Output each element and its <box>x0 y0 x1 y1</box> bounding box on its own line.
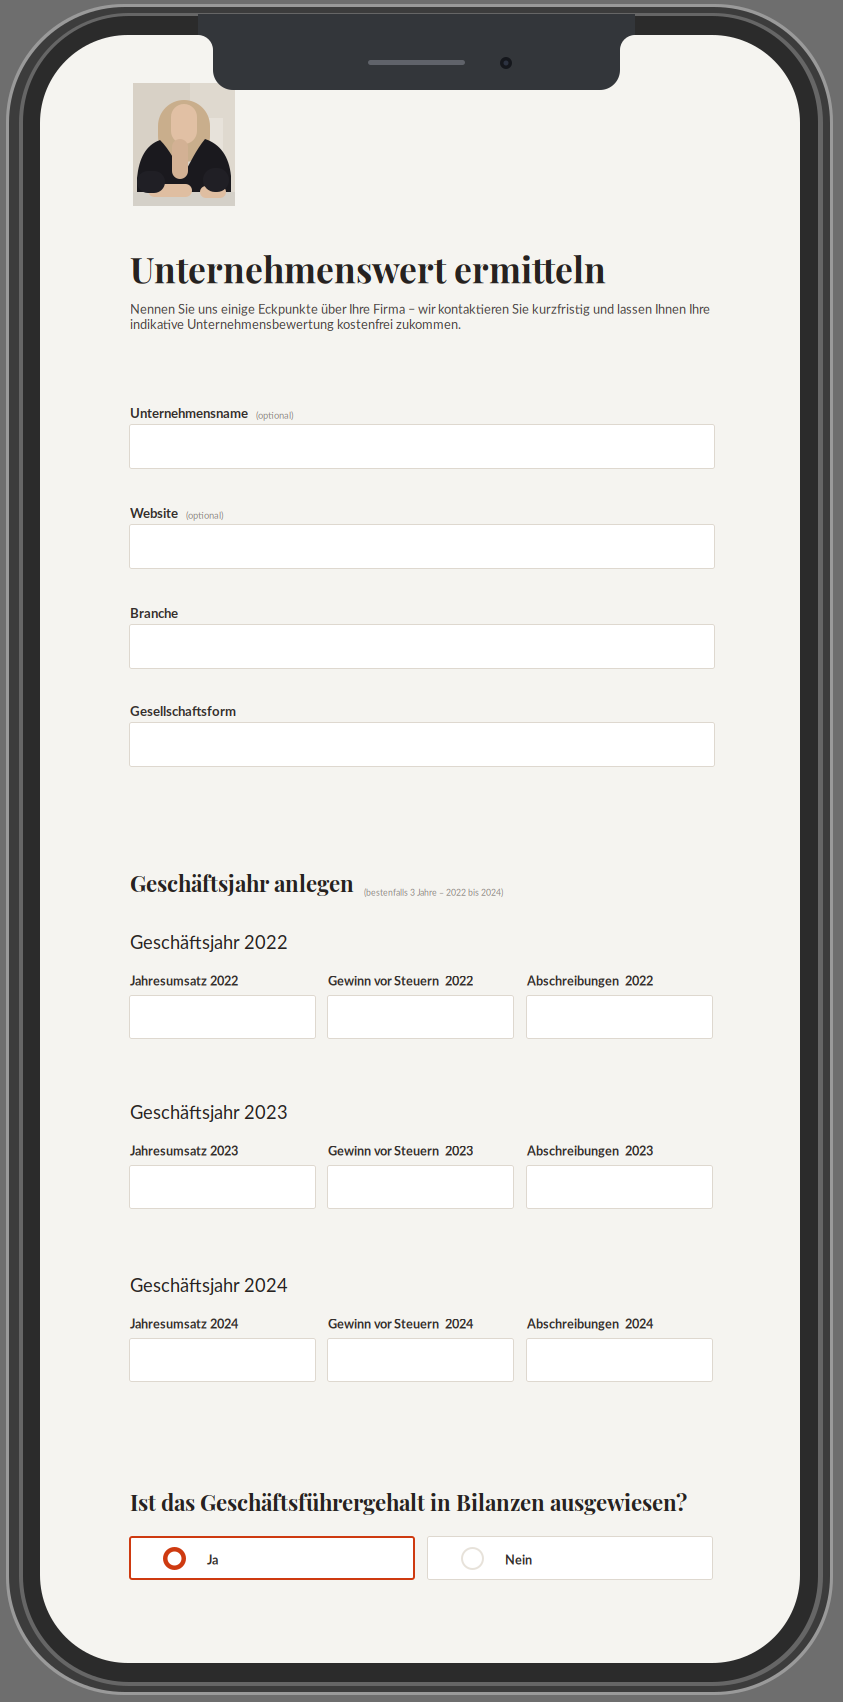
button[interactable]: Ja <box>129 1536 415 1580</box>
staticText: Abschreibungen 2024 <box>527 1316 653 1331</box>
staticText: (optional) <box>186 510 223 521</box>
button[interactable]: Nein <box>427 1536 713 1580</box>
staticText: Jahresumsatz 2024 <box>130 1316 238 1331</box>
staticText: Geschäftsjahr 2023 <box>130 1101 288 1123</box>
staticText: Jahresumsatz 2023 <box>130 1143 238 1158</box>
staticText: Website <box>130 505 178 521</box>
staticText: Branche <box>130 605 178 621</box>
staticText: Abschreibungen 2023 <box>527 1143 653 1158</box>
staticText: Gewinn vor Steuern 2023 <box>328 1143 473 1158</box>
staticText: Gewinn vor Steuern 2022 <box>328 973 473 988</box>
staticText: Gewinn vor Steuern 2024 <box>328 1316 473 1331</box>
staticText: Ja <box>207 1552 218 1567</box>
staticText: Geschäftsjahr anlegen <box>130 868 354 897</box>
staticText: Gesellschaftsform <box>130 703 236 719</box>
staticText: Geschäftsjahr 2024 <box>130 1274 288 1296</box>
staticText: Unternehmensname <box>130 405 248 421</box>
staticText: Ist das Geschäftsführergehalt in Bilanze… <box>130 1487 687 1516</box>
staticText: Abschreibungen 2022 <box>527 973 653 988</box>
staticText: Jahresumsatz 2022 <box>130 973 238 988</box>
staticText: (optional) <box>256 410 293 421</box>
staticText: Geschäftsjahr 2022 <box>130 931 288 953</box>
staticText: Nennen Sie uns einige Eckpunkte über Ihr… <box>130 301 710 332</box>
staticText: Unternehmenswert ermitteln <box>130 245 606 292</box>
staticText: Nein <box>505 1552 532 1567</box>
staticText: (bestenfalls 3 Jahre – 2022 bis 2024) <box>364 887 503 897</box>
